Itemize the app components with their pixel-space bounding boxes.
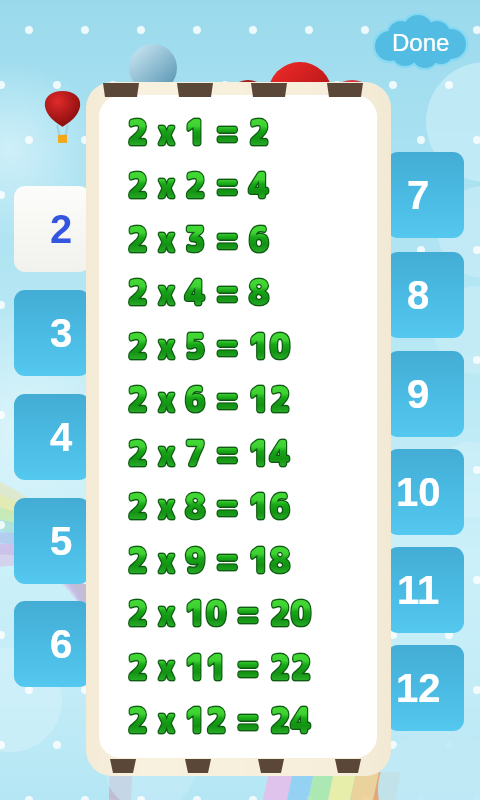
button[interactable]: 4 [14, 394, 90, 480]
button[interactable]: 7 [387, 152, 464, 238]
staticText: 10 [396, 470, 441, 515]
staticText: 2 [50, 207, 73, 252]
button[interactable]: 9 [387, 351, 464, 437]
staticText: 3 [50, 311, 73, 356]
button[interactable]: 12 [387, 645, 464, 731]
button[interactable]: 6 [14, 601, 90, 687]
button[interactable]: 3 [14, 290, 90, 376]
button[interactable]: 10 [387, 449, 464, 535]
staticText: 6 [50, 622, 73, 667]
button[interactable]: 11 [387, 547, 464, 633]
button[interactable]: 8 [387, 252, 464, 338]
staticText: 8 [407, 273, 430, 318]
button[interactable]: 2 [14, 186, 90, 272]
staticText: 5 [50, 519, 73, 564]
staticText: 12 [396, 666, 441, 711]
button[interactable]: 5 [14, 498, 90, 584]
staticText: Done [392, 29, 450, 56]
staticText: 7 [407, 173, 430, 218]
staticText: 4 [50, 415, 73, 460]
staticText: 9 [407, 372, 430, 417]
button[interactable]: Done [374, 14, 468, 70]
staticText: 11 [397, 568, 440, 613]
